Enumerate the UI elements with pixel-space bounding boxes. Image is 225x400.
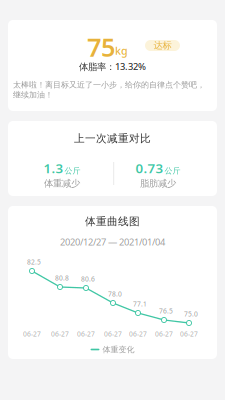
staticText: 80.6 [81, 275, 95, 283]
staticText: 体重曲线图 [85, 215, 140, 228]
staticText: 0.73 [135, 159, 163, 177]
staticText: 公斤 [64, 166, 80, 176]
staticText: 06-27 [77, 330, 95, 338]
staticText: 达标 [153, 40, 171, 51]
staticText: 06-27 [155, 330, 173, 338]
staticText: 75 [87, 30, 115, 64]
staticText: 太棒啦！离目标又近了一小步，给你的自律点个赞吧，继续加油！ [13, 80, 205, 100]
staticText: 77.1 [133, 300, 147, 308]
staticText: kg [115, 43, 128, 58]
staticText: 体重变化 [102, 345, 134, 354]
staticText: 体脂率：13.32% [79, 60, 146, 73]
staticText: 公斤 [164, 166, 180, 176]
staticText: 2020/12/27 — 2021/01/04 [60, 236, 165, 248]
staticText: 06-27 [129, 330, 147, 338]
staticText: 76.5 [159, 307, 173, 315]
staticText: 1.3 [43, 159, 63, 177]
staticText: 06-27 [51, 330, 69, 338]
staticText: 78.0 [108, 290, 122, 298]
staticText: 80.8 [55, 274, 69, 282]
staticText: 上一次减重对比 [74, 132, 151, 145]
staticText: 06-27 [180, 330, 198, 338]
button[interactable]: 达标 [145, 40, 180, 51]
staticText: 06-27 [104, 330, 122, 338]
staticText: 06-27 [23, 330, 41, 338]
staticText: 82.5 [27, 258, 41, 266]
staticText: 75.0 [184, 310, 198, 318]
staticText: 体重减少 [44, 178, 80, 189]
staticText: 脂肪减少 [140, 178, 176, 189]
